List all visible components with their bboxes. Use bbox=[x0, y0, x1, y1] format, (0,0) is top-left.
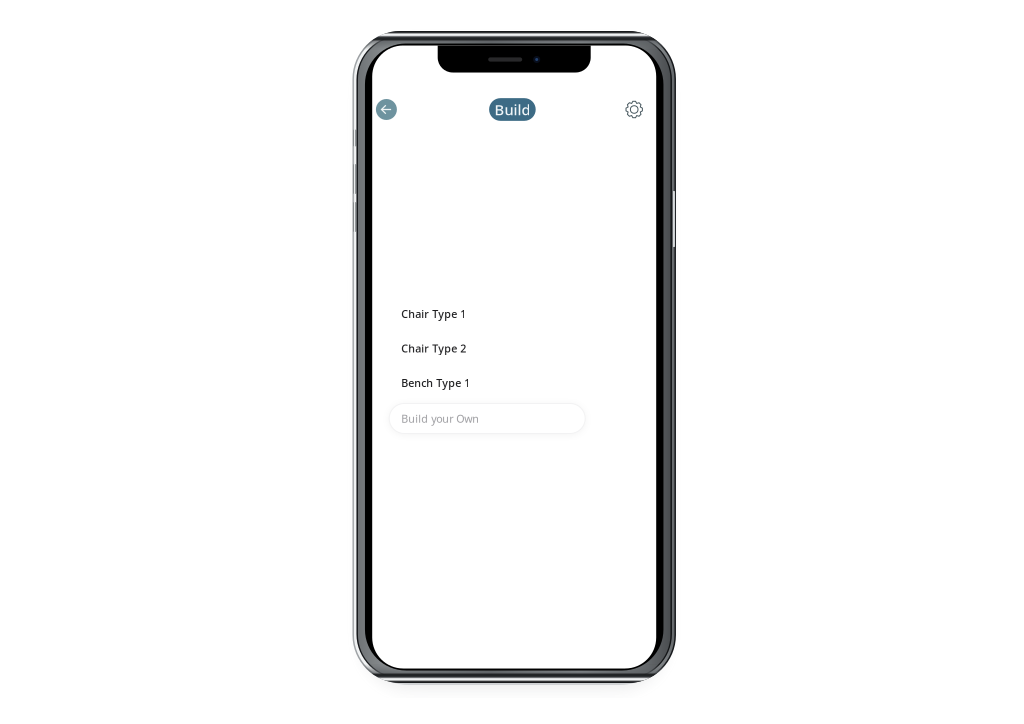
button[interactable]: Back bbox=[372, 95, 400, 123]
button[interactable]: Chair Type 1 bbox=[372, 296, 656, 331]
staticText: Chair Type 2 bbox=[401, 341, 466, 355]
button[interactable]: Build your Own bbox=[389, 403, 585, 433]
button[interactable]: Build bbox=[489, 98, 536, 121]
staticText: Chair Type 1 bbox=[401, 307, 466, 321]
button[interactable]: Bench Type 1 bbox=[372, 365, 656, 400]
staticText: Bench Type 1 bbox=[401, 376, 470, 390]
button[interactable]: Chair Type 2 bbox=[372, 331, 656, 365]
button[interactable]: Settings bbox=[620, 95, 648, 123]
staticText: Build your Own bbox=[401, 411, 479, 426]
staticText: Build bbox=[494, 100, 530, 119]
